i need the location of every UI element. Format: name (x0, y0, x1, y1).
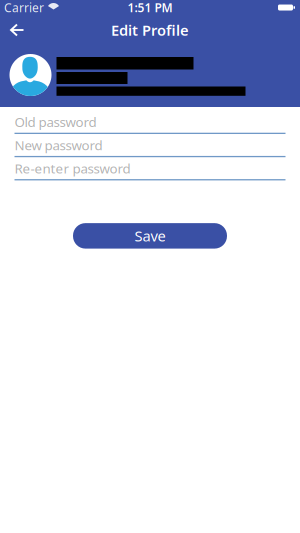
staticText: 1:51 PM (127, 0, 172, 15)
staticText: Carrier (4, 0, 44, 15)
button[interactable]: Old password (14, 113, 285, 136)
button[interactable]: Save (73, 223, 227, 249)
staticText: Edit Profile (111, 20, 189, 40)
staticText: Old password (14, 113, 96, 131)
staticText: Save (134, 226, 165, 246)
button[interactable]: New password (14, 136, 285, 159)
button[interactable]: Re-enter password (14, 159, 285, 183)
button[interactable]: Back (3, 15, 32, 44)
staticText: New password (14, 136, 102, 154)
staticText: Re-enter password (14, 159, 130, 177)
